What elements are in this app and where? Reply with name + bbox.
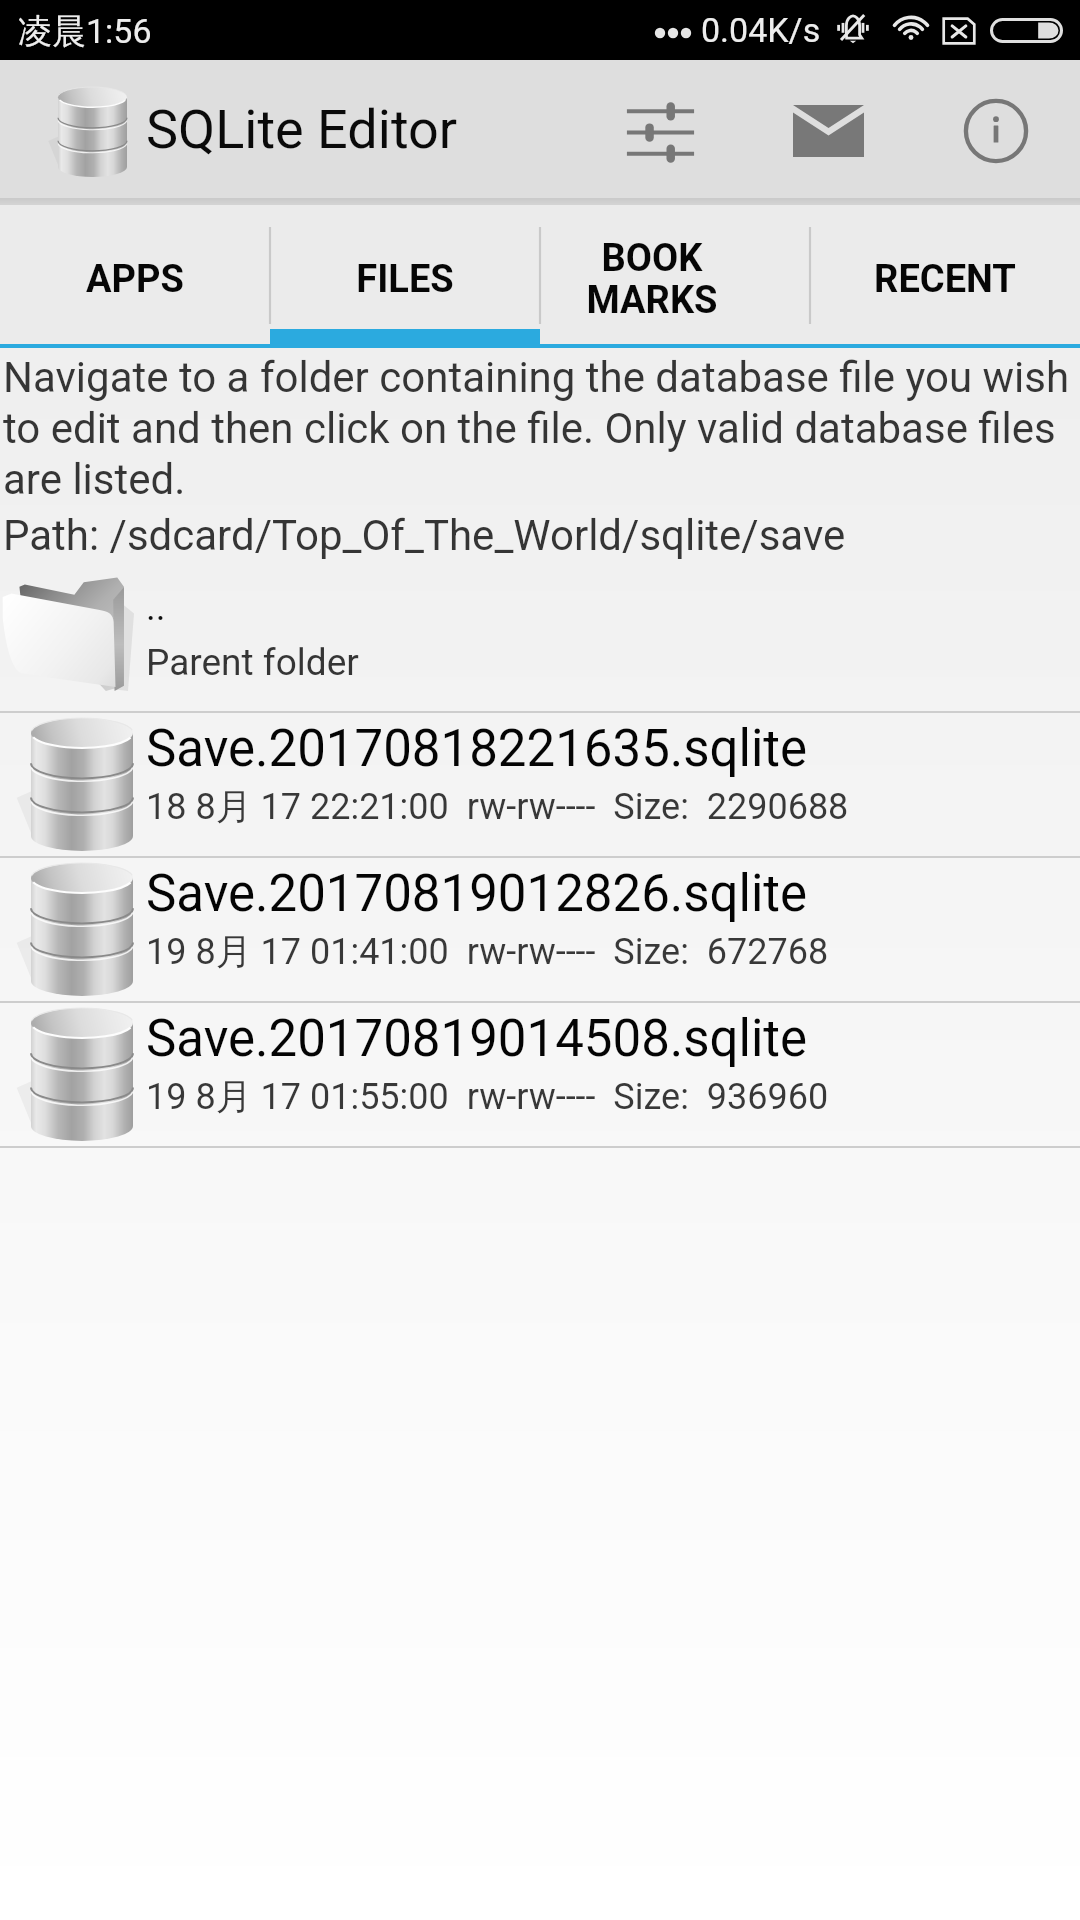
- staticText: SQLite Editor: [146, 98, 458, 161]
- staticText: BOOK MARKS: [586, 236, 718, 323]
- staticText: Save.20170819014508.sqlite: [146, 1009, 808, 1069]
- staticText: Save.20170819012826.sqlite: [146, 864, 808, 924]
- staticText: RECENT: [874, 257, 1016, 302]
- staticText: APPS: [86, 257, 184, 302]
- button[interactable]: APPS: [0, 205, 270, 348]
- staticText: 19 8月 17 01:41:00 rw-rw---- Size: 672768: [146, 929, 829, 974]
- button[interactable]: ..: [0, 568, 1080, 711]
- staticText: 18 8月 17 22:21:00 rw-rw---- Size: 229068…: [146, 784, 849, 829]
- staticText: Save.20170818221635.sqlite: [146, 719, 808, 779]
- staticText: 0.04K/s: [701, 10, 821, 50]
- staticText: Path: /sdcard/Top_Of_The_World/sqlite/sa…: [3, 511, 846, 560]
- button[interactable]: Save.20170819014508.sqlite: [0, 1003, 1080, 1146]
- staticText: 凌晨1:56: [18, 10, 152, 53]
- button[interactable]: BOOK MARKS: [540, 205, 810, 348]
- staticText: Navigate to a folder containing the data…: [3, 353, 1080, 505]
- button[interactable]: Send feedback: [757, 60, 900, 198]
- button[interactable]: Settings: [589, 60, 732, 198]
- staticText: FILES: [356, 257, 454, 302]
- button[interactable]: Save.20170818221635.sqlite: [0, 713, 1080, 856]
- staticText: Parent folder: [146, 641, 359, 684]
- staticText: 19 8月 17 01:55:00 rw-rw---- Size: 936960: [146, 1074, 829, 1119]
- button[interactable]: FILES: [270, 205, 540, 348]
- button[interactable]: RECENT: [810, 205, 1080, 348]
- button[interactable]: About: [924, 60, 1067, 198]
- button[interactable]: Save.20170819012826.sqlite: [0, 858, 1080, 1001]
- staticText: ..: [146, 586, 166, 629]
